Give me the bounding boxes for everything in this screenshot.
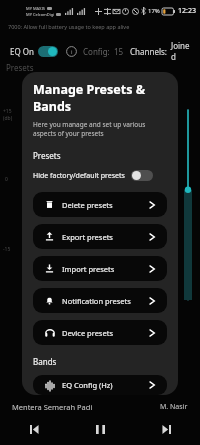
button[interactable]: Info [66,46,77,57]
staticText: 7000: Allow full battery usage to keep a… [8,23,130,30]
staticText: Notification presets [62,296,131,306]
staticText: Import presets [62,264,115,274]
button[interactable]: Delete presets [33,192,167,217]
button[interactable]: Hide factory/default presets [33,170,167,181]
button[interactable] [38,46,58,57]
button[interactable]: Import presets [33,256,167,281]
staticText: Device presets [62,328,113,338]
staticText: Here you manage and set up various aspec… [33,120,146,138]
staticText: Export presets [62,232,113,242]
staticText: Presets [33,150,61,161]
staticText: Bands [33,356,57,367]
staticText: 17% [148,7,160,15]
staticText: -15 [3,246,11,253]
staticText: Manage Presets & Bands [33,81,167,115]
staticText: EQ Config (Hz) [62,380,113,390]
button[interactable]: Export presets [33,224,167,249]
button[interactable]: Notification presets [33,288,167,313]
staticText: 12:23 [178,6,196,16]
staticText: EQ On [10,46,34,57]
staticText: Presets [6,62,34,73]
staticText: 15 [114,46,124,57]
staticText: +15 [3,108,12,115]
button[interactable]: Next [156,419,176,439]
button[interactable]: Device presets [33,320,167,345]
staticText: 0 [5,176,8,183]
staticText: MY MAXIS [26,6,46,11]
staticText: Hide factory/default presets [33,171,125,181]
staticText: Channels: [130,46,167,57]
staticText: Mentera Semerah Padi [12,402,160,412]
staticText: M. Nasir [160,402,188,412]
staticText: Config: [83,46,110,57]
button[interactable]: Previous [24,419,44,439]
staticText: i [71,48,73,56]
staticText: (db) [3,115,13,122]
staticText: MY CelcomDigi [26,12,55,17]
button[interactable]: EQ Config (Hz) [33,375,167,395]
button[interactable]: Pause [90,419,110,439]
staticText: Joined [171,40,190,62]
staticText: Delete presets [62,200,113,210]
